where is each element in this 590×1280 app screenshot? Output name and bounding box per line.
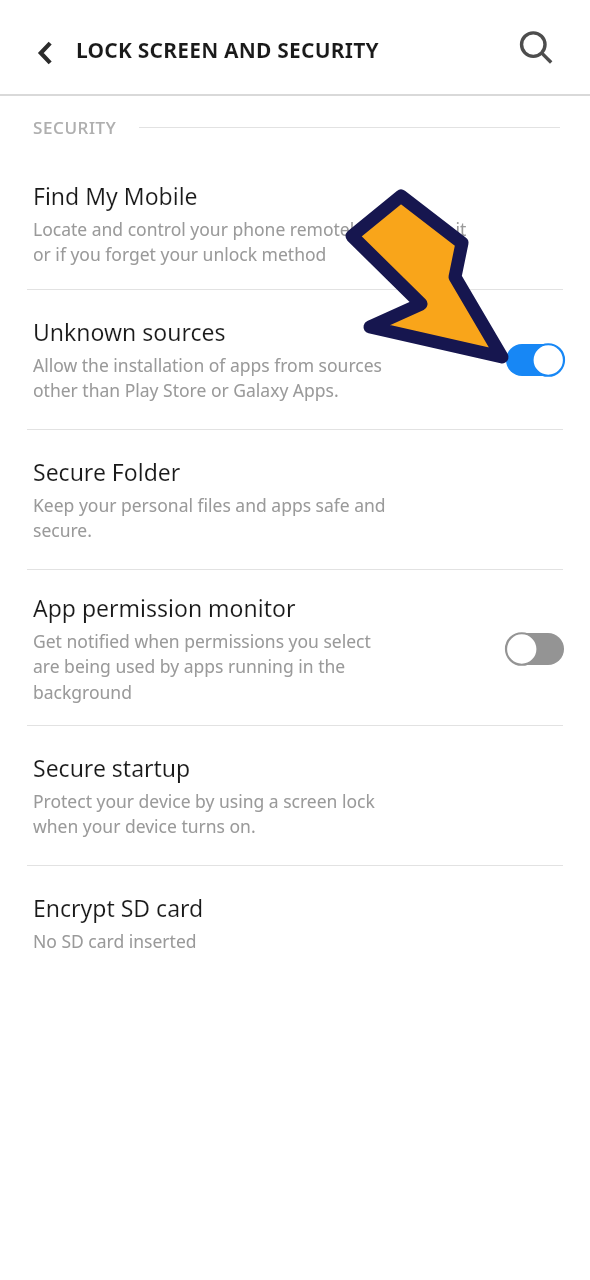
button[interactable]: Unknown sources on bbox=[504, 338, 566, 382]
staticText: Secure startup bbox=[33, 752, 191, 783]
staticText: Unknown sources bbox=[33, 316, 226, 347]
staticText: Keep your personal files and apps safe a… bbox=[33, 493, 386, 543]
staticText: Find My Mobile bbox=[33, 180, 198, 211]
staticText: App permission monitor bbox=[33, 592, 296, 623]
staticText: Get notified when permissions you select… bbox=[33, 629, 371, 705]
staticText: Locate and control your phone remotely i… bbox=[33, 217, 467, 267]
staticText: Secure Folder bbox=[33, 456, 181, 487]
button[interactable]: Encrypt SD card bbox=[0, 866, 590, 979]
button[interactable]: Secure startup bbox=[0, 726, 590, 865]
staticText: Protect your device by using a screen lo… bbox=[33, 789, 375, 839]
button[interactable]: Back bbox=[22, 29, 70, 77]
button[interactable]: Unknown sources bbox=[0, 290, 590, 429]
staticText: Encrypt SD card bbox=[33, 892, 204, 923]
staticText: SECURITY bbox=[33, 116, 117, 139]
staticText: LOCK SCREEN AND SECURITY bbox=[76, 36, 379, 65]
staticText: Allow the installation of apps from sour… bbox=[33, 353, 382, 403]
button[interactable]: Find My Mobile bbox=[0, 158, 590, 289]
staticText: No SD card inserted bbox=[33, 929, 197, 953]
button[interactable]: App permission monitor off bbox=[504, 627, 566, 671]
button[interactable]: Search bbox=[512, 24, 560, 72]
button[interactable]: App permission monitor bbox=[0, 570, 590, 725]
button[interactable]: Secure Folder bbox=[0, 430, 590, 569]
